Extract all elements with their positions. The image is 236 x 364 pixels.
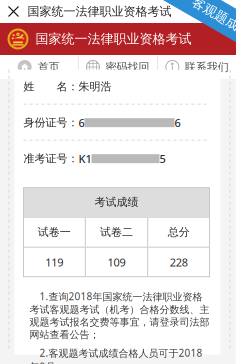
button[interactable]: 联系我们 (158, 55, 236, 79)
staticText: 准考证号： (23, 152, 78, 166)
staticText: 国家统一法律职业资格考试 (27, 4, 171, 19)
staticText: 客观题成绩 (187, 16, 236, 32)
staticText: 国家统一法律职业资格考试 (35, 31, 191, 47)
staticText: 6 (174, 115, 180, 130)
staticText: 5 (159, 151, 165, 166)
staticText: 姓 名： (23, 80, 78, 94)
staticText: 总分 (168, 225, 190, 239)
staticText: 2.客观题考试成绩合格人员可于2018年9月 (29, 346, 202, 364)
staticText: 朱明浩 (78, 80, 111, 94)
button[interactable]: Close (0, 0, 27, 23)
staticText: 119 (45, 255, 63, 270)
staticText: 109 (107, 255, 125, 270)
staticText: 密码找回 (105, 60, 149, 74)
button[interactable]: 首页 (0, 55, 78, 79)
button[interactable]: 密码找回 (79, 55, 157, 79)
staticText: 身份证号： (23, 116, 78, 130)
staticText: K1 (78, 151, 91, 166)
staticText: 联系我们 (185, 60, 229, 74)
staticText: 试卷二 (100, 225, 133, 239)
staticText: 228 (170, 255, 188, 270)
staticText: 首页 (38, 60, 60, 74)
staticText: 试卷一 (38, 225, 71, 239)
button[interactable]: More options (196, 0, 236, 23)
staticText: 6 (78, 115, 84, 130)
staticText: 考试成绩 (94, 195, 138, 209)
staticText: 1.查询2018年国家统一法律职业资格考试客观题考试（机考）合格分数线、主观题考… (29, 290, 209, 341)
